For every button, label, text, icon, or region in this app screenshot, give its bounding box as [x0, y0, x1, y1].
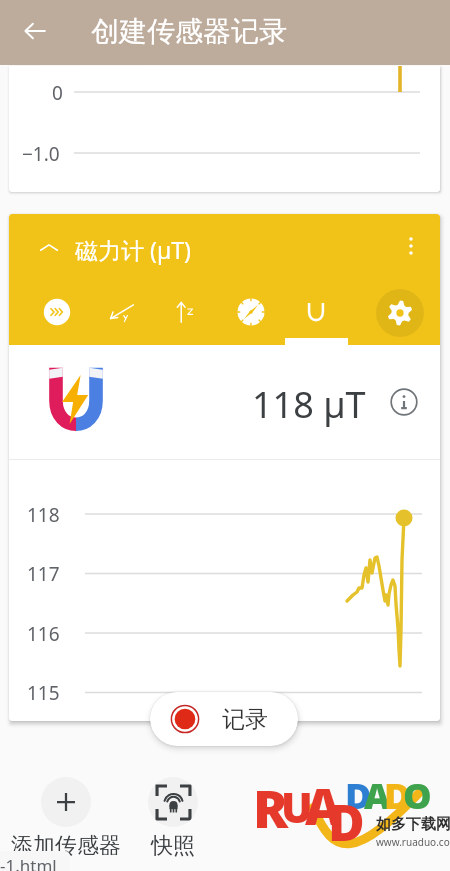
button[interactable]: 记录 [150, 692, 298, 746]
staticText: 添加传感器 [6, 832, 126, 860]
staticText: 记录 [222, 705, 268, 734]
button[interactable]: Collapse [31, 230, 67, 266]
staticText: 118 µT [252, 380, 366, 429]
button[interactable]: Settings [376, 289, 424, 337]
staticText: 117 [27, 561, 60, 587]
staticText: 创建传感器记录 [91, 14, 287, 49]
button[interactable]: 快照 [123, 777, 223, 860]
staticText: 118 [27, 502, 60, 528]
button[interactable]: 添加传感器 [6, 777, 126, 860]
button[interactable]: Info [387, 385, 421, 419]
button[interactable]: More options [393, 228, 429, 264]
staticText: 快照 [123, 832, 223, 860]
staticText: A [364, 771, 391, 820]
staticText: -1.html [0, 854, 57, 871]
staticText: U [281, 778, 313, 835]
staticText: 0 [52, 80, 63, 106]
staticText: 磁力计 (µT) [75, 234, 191, 265]
staticText: 116 [27, 621, 60, 647]
button[interactable]: Compass [225, 286, 277, 338]
staticText: D [384, 771, 411, 820]
staticText: A [305, 772, 342, 840]
button[interactable]: Z axis [160, 286, 212, 338]
staticText: R [253, 772, 289, 843]
staticText: −1.0 [22, 141, 60, 167]
button[interactable]: X axis [96, 286, 148, 338]
staticText: D [328, 788, 365, 856]
staticText: 115 [27, 680, 60, 706]
button[interactable]: Magnitude [290, 286, 342, 338]
button[interactable]: Back [17, 13, 53, 49]
button[interactable]: Combined [31, 286, 83, 338]
staticText: www.ruaduo.com [376, 835, 450, 849]
staticText: D [345, 771, 372, 820]
staticText: 如多下载网 [376, 815, 450, 834]
staticText: O [403, 771, 432, 820]
